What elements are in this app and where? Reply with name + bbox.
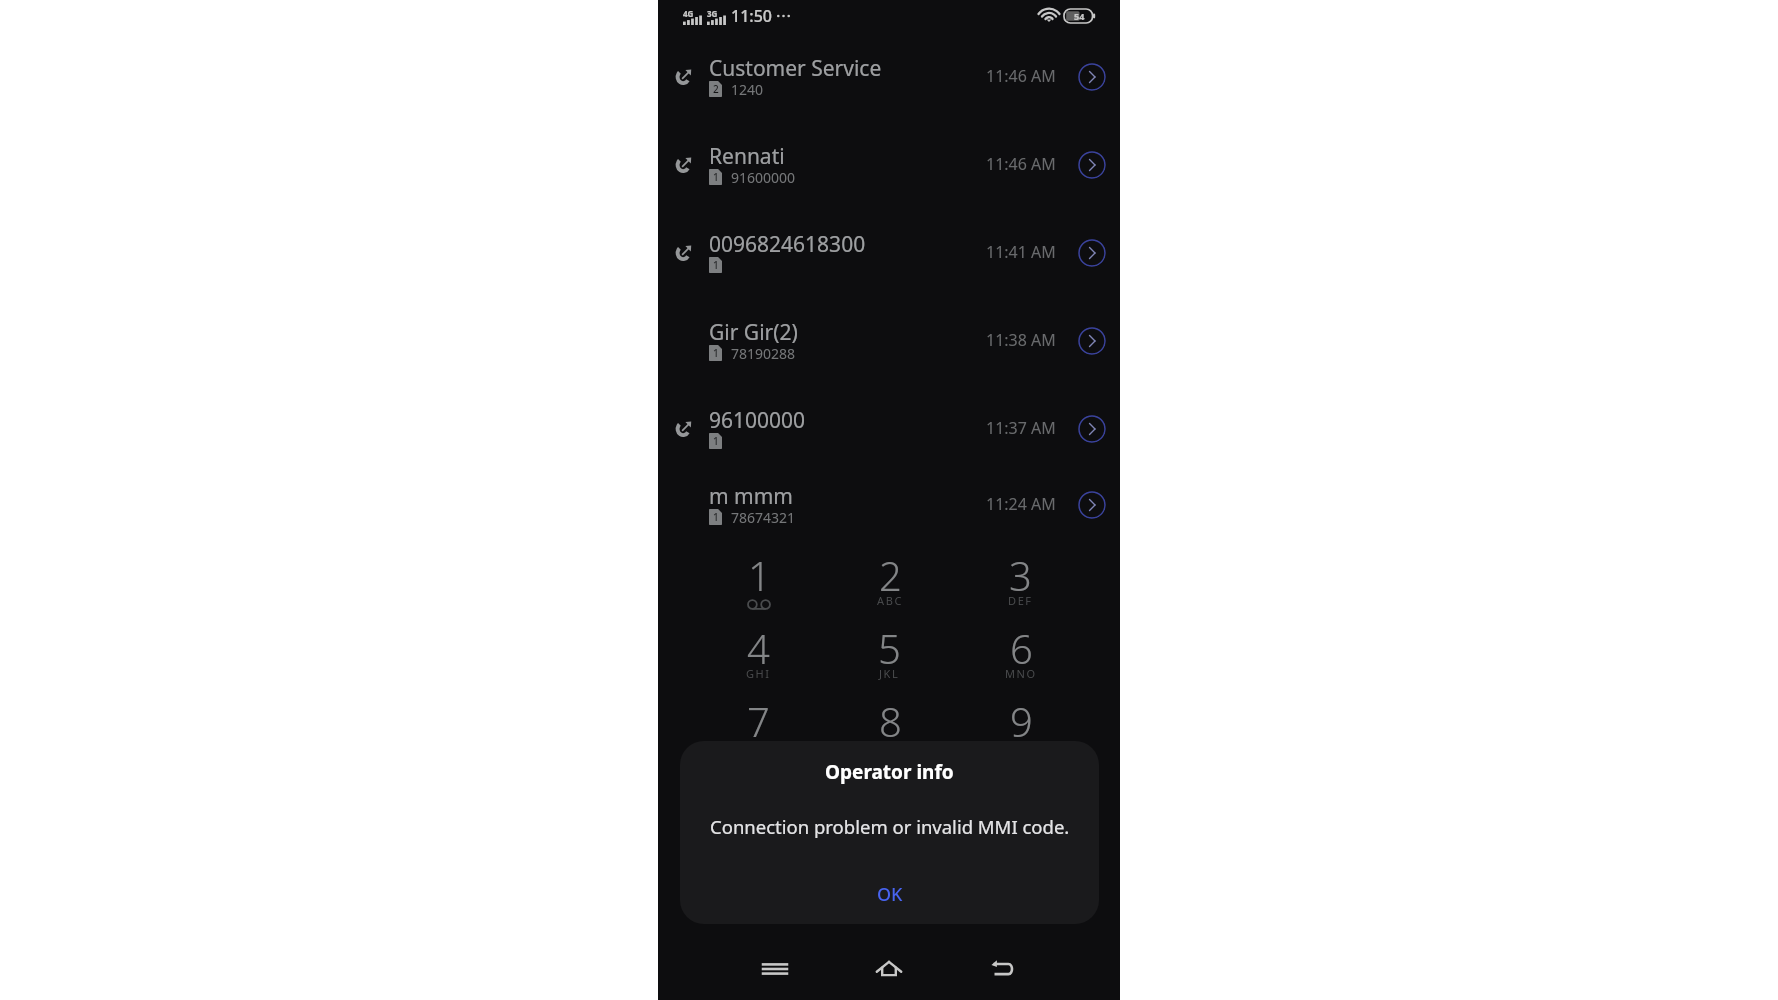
staticText: m mmm xyxy=(709,482,793,508)
button[interactable]: 7 xyxy=(693,694,824,767)
staticText: 78190288 xyxy=(731,344,796,362)
staticText: 9 xyxy=(1010,694,1033,739)
staticText: 3 xyxy=(1009,548,1032,593)
button[interactable]: Customer Service xyxy=(658,32,1120,120)
staticText: 11:46 AM xyxy=(986,153,1056,175)
staticText: 1 xyxy=(713,346,719,360)
button[interactable]: Gir Gir(2) xyxy=(658,296,1120,384)
staticText: Rennati xyxy=(709,142,785,168)
staticText: TUV xyxy=(877,739,903,754)
button[interactable]: Call details xyxy=(1077,490,1106,519)
button[interactable]: 4 xyxy=(693,621,824,694)
staticText: 11:37 AM xyxy=(986,417,1056,439)
button[interactable]: 9 xyxy=(955,694,1086,767)
staticText: 11:50 xyxy=(731,5,772,27)
button[interactable]: Rennati xyxy=(658,120,1120,208)
button[interactable]: OK xyxy=(680,865,1099,924)
staticText: 7 xyxy=(747,694,770,739)
button[interactable]: Back xyxy=(946,938,1060,1000)
staticText: 0096824618300 xyxy=(709,230,866,256)
staticText: OK xyxy=(877,882,903,907)
staticText: GHI xyxy=(746,666,771,681)
staticText: 1 xyxy=(713,434,719,448)
staticText: 1 xyxy=(748,548,771,593)
button[interactable]: m mmm xyxy=(658,472,1120,536)
staticText: Operator info xyxy=(825,759,954,785)
staticText: 54 xyxy=(1074,10,1085,22)
staticText: Connection problem or invalid MMI code. xyxy=(710,814,1070,839)
button[interactable]: 0096824618300 xyxy=(658,208,1120,296)
staticText: 11:24 AM xyxy=(986,493,1056,515)
staticText: 91600000 xyxy=(731,168,796,186)
staticText: 2 xyxy=(879,548,902,593)
staticText: 11:46 AM xyxy=(986,65,1056,87)
staticText: 5 xyxy=(878,621,901,666)
staticText: Gir Gir(2) xyxy=(709,318,798,344)
staticText: 8 xyxy=(879,694,902,739)
staticText: 1 xyxy=(713,510,719,524)
staticText: 11:41 AM xyxy=(986,241,1056,263)
staticText: 1 xyxy=(713,170,719,184)
staticText: 4G xyxy=(683,8,694,19)
button[interactable]: Menu xyxy=(718,938,832,1000)
staticText: MNO xyxy=(1005,666,1037,681)
staticText: JKL xyxy=(879,666,900,681)
button[interactable]: Call details xyxy=(1077,62,1106,91)
staticText: 3G xyxy=(707,8,718,19)
staticText: 4 xyxy=(747,621,770,666)
button[interactable]: 8 xyxy=(824,694,955,767)
staticText: 6 xyxy=(1010,621,1033,666)
staticText: PQRS xyxy=(741,739,776,754)
button[interactable]: 2 xyxy=(824,548,955,621)
button[interactable]: Home xyxy=(832,938,946,1000)
button[interactable]: 6 xyxy=(955,621,1086,694)
staticText: 1 xyxy=(713,258,719,272)
staticText: ABC xyxy=(877,593,903,608)
staticText: 2 xyxy=(713,82,719,96)
staticText: 96100000 xyxy=(709,406,806,432)
button[interactable]: 1 xyxy=(693,548,824,621)
button[interactable]: Call details xyxy=(1077,326,1106,355)
button[interactable]: Call details xyxy=(1077,414,1106,443)
staticText: Customer Service xyxy=(709,54,882,80)
button[interactable]: Call details xyxy=(1077,238,1106,267)
staticText: WXYZ xyxy=(1003,739,1039,754)
staticText: 78674321 xyxy=(731,508,796,526)
button[interactable]: 5 xyxy=(824,621,955,694)
staticText: DEF xyxy=(1008,593,1033,608)
staticText: 11:38 AM xyxy=(986,329,1056,351)
staticText: 1240 xyxy=(731,80,764,98)
button[interactable]: 96100000 xyxy=(658,384,1120,472)
button[interactable]: Call details xyxy=(1077,150,1106,179)
button[interactable]: 3 xyxy=(955,548,1086,621)
